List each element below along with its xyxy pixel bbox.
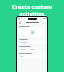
staticText: activities.	[19, 10, 46, 17]
staticText: Create custom	[12, 3, 52, 10]
button[interactable]: Back	[18, 21, 21, 24]
button[interactable]	[19, 55, 45, 58]
button[interactable]	[19, 28, 45, 37]
button[interactable]	[19, 41, 45, 44]
button[interactable]	[19, 48, 28, 51]
button[interactable]	[29, 48, 39, 51]
button[interactable]	[40, 48, 45, 51]
